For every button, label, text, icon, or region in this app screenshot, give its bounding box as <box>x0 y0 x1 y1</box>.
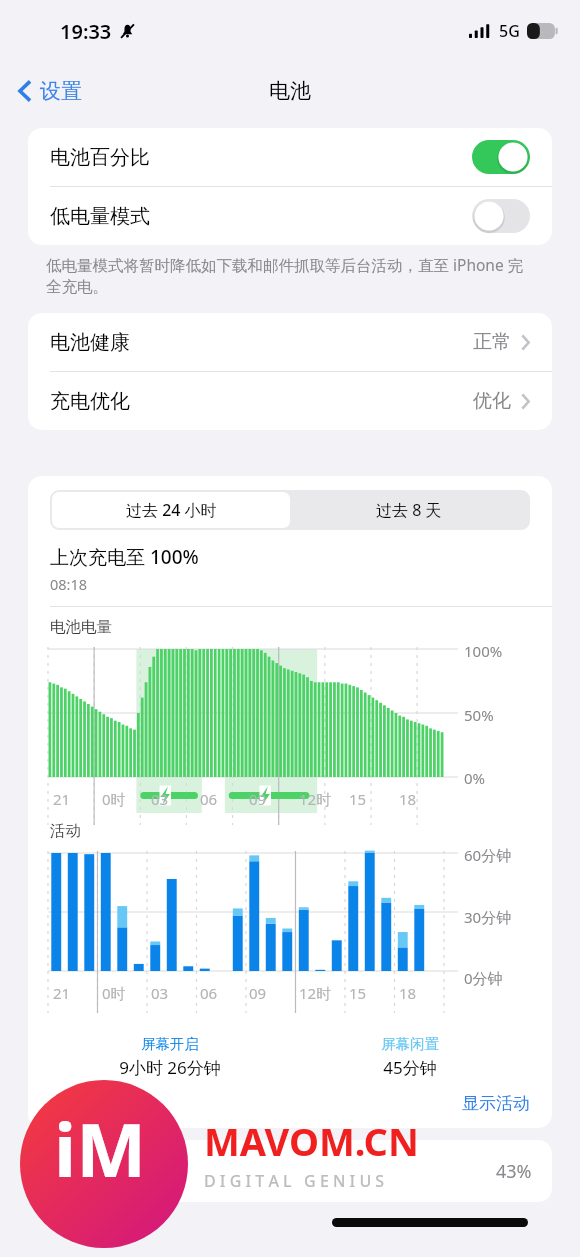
staticText: 45分钟 <box>383 1056 437 1079</box>
staticText: 100% <box>464 641 503 661</box>
staticText: 0分钟 <box>464 968 503 988</box>
staticText: 06 <box>200 789 218 809</box>
staticText: MAVOM.CN <box>204 1115 419 1167</box>
staticText: 过去 8 天 <box>376 499 442 521</box>
staticText: 50% <box>464 705 494 725</box>
staticText: 0时 <box>102 789 126 809</box>
staticText: iM <box>54 1098 146 1199</box>
staticText: 0% <box>464 768 486 788</box>
staticText: 21 <box>53 983 71 1003</box>
staticText: 15 <box>349 789 367 809</box>
staticText: 9小时 26分钟 <box>119 1056 221 1079</box>
button[interactable]: 电池百分比 <box>28 128 552 186</box>
button[interactable]: 过去 24 小时 <box>52 492 290 528</box>
staticText: 正常 <box>473 330 511 354</box>
staticText: 设置 <box>40 78 82 104</box>
staticText: 43% <box>496 1159 532 1184</box>
staticText: 08:18 <box>50 574 88 594</box>
staticText: 19:33 <box>60 18 112 45</box>
staticText: 12时 <box>299 789 332 809</box>
staticText: 显示活动 <box>462 1093 530 1114</box>
button[interactable]: 显示活动 <box>440 1087 552 1120</box>
staticText: 电池电量 <box>50 617 112 637</box>
staticText: 抖音 <box>100 1159 138 1183</box>
staticText: 18 <box>399 789 417 809</box>
staticText: 电池健康 <box>50 330 130 355</box>
staticText: 12时 <box>299 983 332 1003</box>
staticText: 5G <box>499 20 520 42</box>
staticText: 06 <box>200 983 218 1003</box>
button[interactable]: 电池健康 <box>28 313 552 371</box>
staticText: 电池百分比 <box>50 145 150 170</box>
staticText: 30分钟 <box>464 907 512 927</box>
button[interactable]: 低电量模式 <box>28 187 552 245</box>
staticText: D I G I T A L G E N I U S <box>204 1170 385 1192</box>
button[interactable]: 过去 8 天 <box>290 492 528 528</box>
button[interactable]: 设置 <box>0 72 94 110</box>
staticText: 充电优化 <box>50 389 130 414</box>
staticText: 0时 <box>102 983 126 1003</box>
staticText: 过去 24 小时 <box>126 499 217 521</box>
staticText: 低电量模式 <box>50 204 150 229</box>
staticText: 03 <box>151 983 169 1003</box>
staticText: 屏幕闲置 <box>381 1035 439 1053</box>
staticText: 60分钟 <box>464 845 512 865</box>
staticText: 上次充电至 100% <box>50 544 199 570</box>
staticText: 09 <box>249 983 267 1003</box>
staticText: 低电量模式将暂时降低如下载和邮件抓取等后台活动，直至 iPhone 完全充电。 <box>46 254 534 297</box>
staticText: 03 <box>151 789 169 809</box>
button[interactable]: 抖音 <box>28 1140 552 1202</box>
staticText: 屏幕开启 <box>141 1035 199 1053</box>
staticText: 18 <box>399 983 417 1003</box>
staticText: 活动 <box>50 821 81 841</box>
staticText: 09 <box>249 789 267 809</box>
button[interactable]: 充电优化 <box>28 372 552 430</box>
staticText: 电池 <box>269 78 311 104</box>
staticText: 优化 <box>473 389 511 413</box>
staticText: 21 <box>53 789 71 809</box>
staticText: 15 <box>349 983 367 1003</box>
